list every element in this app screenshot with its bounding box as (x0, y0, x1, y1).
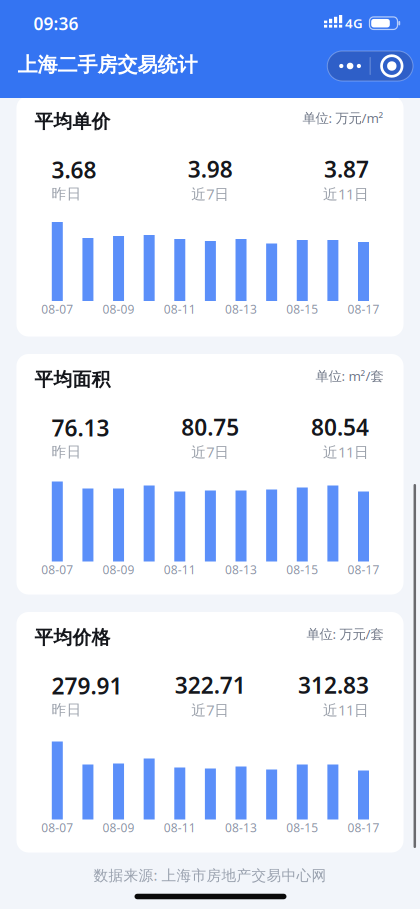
staticText: 08-09 (102, 561, 134, 577)
staticText: 昨日 (51, 701, 81, 719)
staticText: 08-17 (347, 819, 379, 835)
staticText: 09:36 (33, 12, 78, 35)
staticText: 08-17 (347, 301, 379, 317)
staticText: 近11日 (323, 442, 369, 462)
staticText: 单位: 万元/套 (306, 625, 383, 643)
staticText: 08-15 (286, 561, 318, 577)
staticText: 平均面积 (34, 368, 110, 391)
staticText: 08-11 (164, 819, 196, 835)
staticText: 近11日 (323, 700, 369, 720)
staticText: 昨日 (51, 443, 81, 461)
staticText: 昨日 (51, 185, 81, 203)
staticText: 312.83 (298, 670, 369, 700)
staticText: 76.13 (51, 413, 109, 443)
staticText: 08-13 (225, 561, 257, 577)
staticText: 279.91 (51, 671, 122, 701)
staticText: 单位: m²/套 (315, 367, 383, 385)
staticText: 近7日 (191, 442, 229, 462)
staticText: 08-15 (286, 819, 318, 835)
staticText: 08-09 (102, 301, 134, 317)
staticText: 平均价格 (34, 626, 110, 649)
staticText: 数据来源: 上海市房地产交易中心网 (93, 865, 326, 885)
staticText: 80.54 (311, 412, 369, 442)
staticText: 08-07 (41, 561, 73, 577)
staticText: 08-07 (41, 819, 73, 835)
staticText: 08-15 (286, 301, 318, 317)
staticText: 近7日 (191, 700, 229, 720)
staticText: 单位: 万元/m² (302, 109, 383, 127)
staticText: 近11日 (323, 184, 369, 204)
staticText: 80.75 (181, 412, 239, 442)
staticText: 08-17 (347, 561, 379, 577)
staticText: 4G (345, 14, 363, 32)
staticText: 08-11 (164, 301, 196, 317)
staticText: 322.71 (175, 670, 246, 700)
staticText: 08-13 (225, 301, 257, 317)
button[interactable] (327, 51, 371, 81)
staticText: 08-11 (164, 561, 196, 577)
button[interactable] (371, 51, 413, 81)
staticText: 上海二手房交易统计 (17, 52, 197, 77)
staticText: 平均单价 (34, 110, 110, 133)
staticText: 3.98 (188, 154, 233, 184)
staticText: 08-07 (41, 301, 73, 317)
staticText: 08-13 (225, 819, 257, 835)
staticText: 3.87 (324, 154, 369, 184)
staticText: 近7日 (191, 184, 229, 204)
staticText: 3.68 (51, 155, 96, 185)
staticText: 08-09 (102, 819, 134, 835)
